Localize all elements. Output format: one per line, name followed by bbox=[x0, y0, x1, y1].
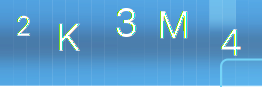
staticText: M bbox=[157, 2, 189, 47]
staticText: K bbox=[56, 14, 80, 60]
staticText: 4 bbox=[220, 22, 242, 64]
staticText: 3 bbox=[114, 0, 137, 46]
staticText: 2 bbox=[15, 10, 31, 42]
